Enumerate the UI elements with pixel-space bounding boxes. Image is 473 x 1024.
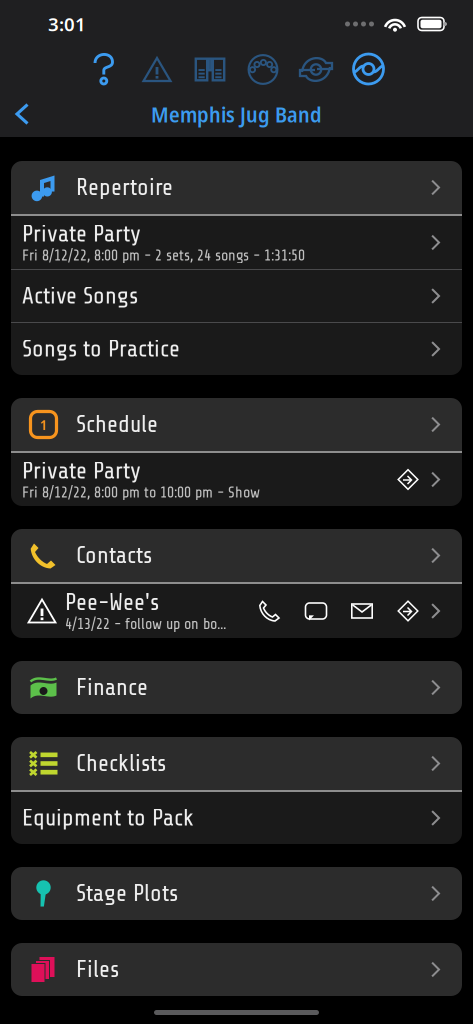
button[interactable]: Sync bbox=[342, 49, 395, 89]
button[interactable]: Metronome bbox=[236, 49, 289, 89]
button[interactable]: Connect bbox=[289, 49, 342, 89]
staticText: Fri 8/12/22, 8:00 pm to 10:00 pm - Show bbox=[22, 484, 260, 501]
button[interactable]: Songs to Practice bbox=[11, 323, 462, 375]
button[interactable]: Pee-Wee's bbox=[11, 584, 462, 638]
staticText: Checklists bbox=[76, 750, 166, 777]
button[interactable]: Repertoire bbox=[11, 161, 462, 214]
staticText: Stage Plots bbox=[76, 880, 178, 907]
staticText: 3:01 bbox=[48, 12, 86, 36]
button[interactable]: Help bbox=[77, 49, 130, 89]
staticText: Private Party bbox=[22, 221, 141, 247]
button[interactable]: Equipment to Pack bbox=[11, 792, 462, 844]
staticText: Songs to Practice bbox=[22, 336, 180, 362]
button[interactable]: Finance bbox=[11, 661, 462, 714]
button[interactable]: 1 bbox=[11, 398, 462, 451]
button[interactable]: Private Party bbox=[11, 216, 462, 269]
staticText: Active Songs bbox=[22, 283, 138, 309]
button[interactable]: Back bbox=[6, 94, 39, 134]
staticText: Pee-Wee's bbox=[65, 589, 159, 616]
staticText: Files bbox=[76, 956, 119, 983]
button[interactable]: Contacts bbox=[11, 529, 462, 582]
staticText: Fri 8/12/22, 8:00 pm - 2 sets, 24 songs … bbox=[22, 247, 305, 264]
button[interactable]: Files bbox=[11, 943, 462, 996]
button[interactable]: Alerts bbox=[130, 49, 183, 89]
staticText: Finance bbox=[76, 674, 148, 701]
staticText: 1 bbox=[40, 414, 47, 434]
staticText: Repertoire bbox=[76, 174, 173, 201]
button[interactable]: Stage Plots bbox=[11, 867, 462, 920]
button[interactable]: Active Songs bbox=[11, 270, 462, 322]
button[interactable]: Checklists bbox=[11, 737, 462, 790]
staticText: Private Party bbox=[22, 458, 141, 484]
button[interactable]: Set Lists bbox=[183, 49, 236, 89]
button[interactable]: Private Party bbox=[11, 453, 462, 506]
staticText: 4/13/22 - follow up on bo... bbox=[65, 616, 226, 633]
staticText: Memphis Jug Band bbox=[151, 99, 322, 129]
staticText: Contacts bbox=[76, 542, 152, 569]
staticText: Schedule bbox=[76, 411, 158, 438]
staticText: Equipment to Pack bbox=[22, 805, 194, 831]
